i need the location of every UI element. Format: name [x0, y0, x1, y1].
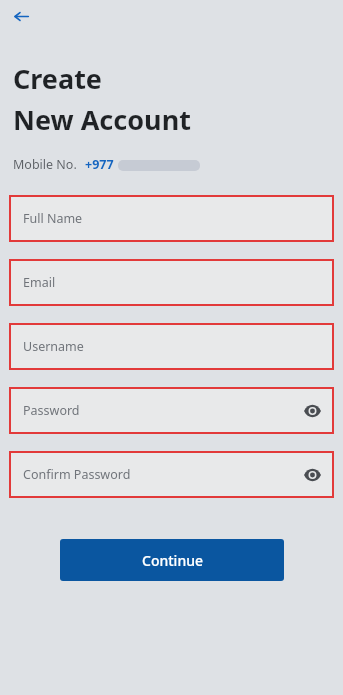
- button[interactable]: Continue: [60, 539, 284, 581]
- button[interactable]: Full Name: [9, 195, 334, 242]
- button[interactable]: Show password: [301, 464, 323, 486]
- staticText: Email: [23, 274, 56, 291]
- button[interactable]: Show password: [301, 400, 323, 422]
- staticText: Full Name: [23, 210, 83, 227]
- staticText: Mobile No.: [13, 156, 77, 173]
- staticText: New Account: [13, 101, 191, 138]
- staticText: Confirm Password: [23, 466, 131, 483]
- staticText: Continue: [142, 551, 203, 570]
- button[interactable]: Back: [8, 3, 34, 29]
- staticText: Username: [23, 338, 84, 355]
- staticText: Create: [13, 60, 102, 97]
- staticText: +977: [85, 156, 114, 173]
- button[interactable]: Password: [9, 387, 334, 434]
- button[interactable]: Username: [9, 323, 334, 370]
- button[interactable]: Email: [9, 259, 334, 306]
- staticText: Password: [23, 402, 80, 419]
- button[interactable]: Confirm Password: [9, 451, 334, 498]
